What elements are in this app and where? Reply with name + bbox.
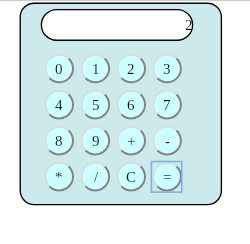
button[interactable]: 9: [81, 126, 111, 156]
staticText: 0: [55, 61, 63, 78]
staticText: 9: [92, 133, 100, 150]
button[interactable]: C: [116, 162, 146, 192]
staticText: 5: [92, 97, 100, 114]
button[interactable]: 6: [116, 90, 146, 120]
staticText: /: [94, 169, 99, 186]
button[interactable]: 5: [81, 90, 111, 120]
staticText: 8: [55, 133, 63, 150]
staticText: C: [126, 169, 137, 186]
staticText: -: [165, 133, 170, 150]
staticText: 2: [185, 17, 193, 31]
button[interactable]: 2: [116, 54, 146, 84]
button[interactable]: 3: [152, 54, 182, 84]
staticText: 3: [163, 61, 171, 78]
staticText: 7: [163, 97, 171, 114]
button[interactable]: 8: [44, 126, 74, 156]
button[interactable]: -: [152, 126, 182, 156]
button[interactable]: 7: [152, 90, 182, 120]
staticText: 2: [127, 61, 135, 78]
staticText: 4: [55, 97, 63, 114]
button[interactable]: 0: [44, 54, 74, 84]
button[interactable]: /: [81, 162, 111, 192]
staticText: 6: [127, 97, 135, 114]
staticText: +: [127, 133, 136, 150]
button[interactable]: =: [152, 162, 182, 192]
staticText: 1: [92, 61, 100, 78]
button[interactable]: 1: [81, 54, 111, 84]
button[interactable]: +: [116, 126, 146, 156]
button[interactable]: *: [44, 162, 74, 192]
button[interactable]: 4: [44, 90, 74, 120]
staticText: =: [163, 169, 172, 186]
staticText: *: [55, 169, 63, 186]
